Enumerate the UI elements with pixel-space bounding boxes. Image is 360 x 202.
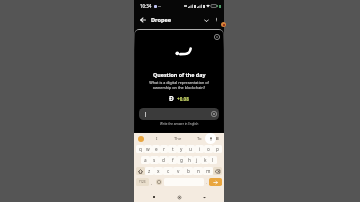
staticText: s — [153, 157, 156, 163]
button[interactable]: Back — [138, 15, 148, 25]
button[interactable]: Info — [213, 33, 220, 40]
staticText: . — [206, 180, 208, 185]
staticText: z — [148, 168, 151, 174]
staticText: k — [204, 157, 207, 163]
button[interactable]: The — [166, 134, 189, 144]
staticText: w — [146, 146, 150, 152]
button[interactable]: To — [189, 134, 210, 144]
button[interactable]: h — [185, 156, 193, 164]
staticText: m — [206, 168, 211, 174]
staticText: e — [155, 146, 158, 152]
staticText: l — [212, 157, 214, 163]
button[interactable]: More options — [212, 15, 221, 24]
staticText: j — [196, 157, 198, 163]
staticText: t — [172, 146, 174, 152]
staticText: Ð — [169, 94, 174, 103]
button[interactable]: g — [177, 156, 185, 164]
button[interactable]: Keyboard settings — [210, 134, 224, 144]
button[interactable]: Expand — [201, 15, 211, 25]
staticText: r — [163, 146, 165, 152]
staticText: Question of the day — [153, 71, 206, 78]
staticText: u — [189, 146, 192, 152]
button[interactable]: a — [141, 156, 150, 164]
staticText: Dropee — [151, 16, 172, 24]
staticText: 10:34 — [140, 3, 152, 9]
button[interactable]: v — [173, 167, 183, 175]
button[interactable]: m — [203, 167, 213, 175]
button[interactable]: Voice input — [205, 133, 216, 144]
staticText: ?123 — [139, 180, 146, 184]
staticText: What is a digital representation of owne… — [134, 80, 224, 90]
button[interactable]: i — [195, 145, 204, 153]
button[interactable]: I — [148, 134, 166, 144]
button[interactable]: Recents — [149, 192, 159, 202]
button[interactable]: Home — [174, 192, 184, 202]
staticText: Write the answer in English — [160, 122, 199, 126]
staticText: v — [177, 168, 180, 174]
staticText: , — [151, 180, 153, 185]
button[interactable]: w — [144, 145, 152, 153]
button[interactable]: Clear — [211, 111, 217, 117]
button[interactable]: . — [204, 178, 209, 186]
button[interactable]: c — [163, 167, 173, 175]
staticText: i — [199, 146, 201, 152]
button[interactable]: p — [213, 145, 222, 153]
staticText: f — [172, 157, 174, 163]
button[interactable]: Clear — [139, 108, 219, 120]
button[interactable]: l — [209, 156, 217, 164]
button[interactable]: u — [186, 145, 195, 153]
button[interactable]: t — [168, 145, 177, 153]
button[interactable]: , — [149, 178, 154, 186]
staticText: p — [216, 146, 219, 152]
staticText: o — [207, 146, 210, 152]
button[interactable]: f — [168, 156, 177, 164]
staticText: B — [216, 136, 219, 142]
button[interactable]: Emoji — [154, 178, 164, 186]
staticText: a — [144, 157, 147, 163]
button[interactable]: n — [193, 167, 203, 175]
button[interactable]: b — [183, 167, 193, 175]
button[interactable]: Backspace — [213, 167, 222, 175]
button[interactable]: Notification — [221, 22, 226, 27]
button[interactable]: s — [150, 156, 159, 164]
button[interactable]: Clipboard — [134, 134, 148, 144]
button[interactable]: r — [160, 145, 168, 153]
button[interactable]: d — [159, 156, 168, 164]
button[interactable]: e — [152, 145, 160, 153]
button[interactable]: ?123 — [136, 178, 149, 186]
button[interactable]: o — [204, 145, 213, 153]
staticText: q — [139, 146, 142, 152]
staticText: h — [188, 157, 191, 163]
button[interactable]: q — [136, 145, 144, 153]
button[interactable]: z — [145, 167, 154, 175]
button[interactable]: j — [193, 156, 201, 164]
staticText: b — [187, 168, 190, 174]
button[interactable]: x — [154, 167, 163, 175]
button[interactable]: k — [201, 156, 209, 164]
staticText: To — [197, 136, 202, 142]
staticText: y — [180, 146, 183, 152]
staticText: +0.08 — [177, 96, 189, 102]
staticText: g — [180, 157, 183, 163]
staticText: c — [167, 168, 170, 174]
button[interactable]: Back — [199, 192, 209, 202]
button[interactable]: Enter — [209, 178, 222, 186]
staticText: I — [156, 136, 158, 142]
button[interactable]: y — [177, 145, 186, 153]
staticText: The — [174, 136, 182, 142]
staticText: n — [197, 168, 200, 174]
staticText: d — [162, 157, 165, 163]
staticText: x — [157, 168, 160, 174]
button[interactable]: Shift — [136, 167, 145, 175]
